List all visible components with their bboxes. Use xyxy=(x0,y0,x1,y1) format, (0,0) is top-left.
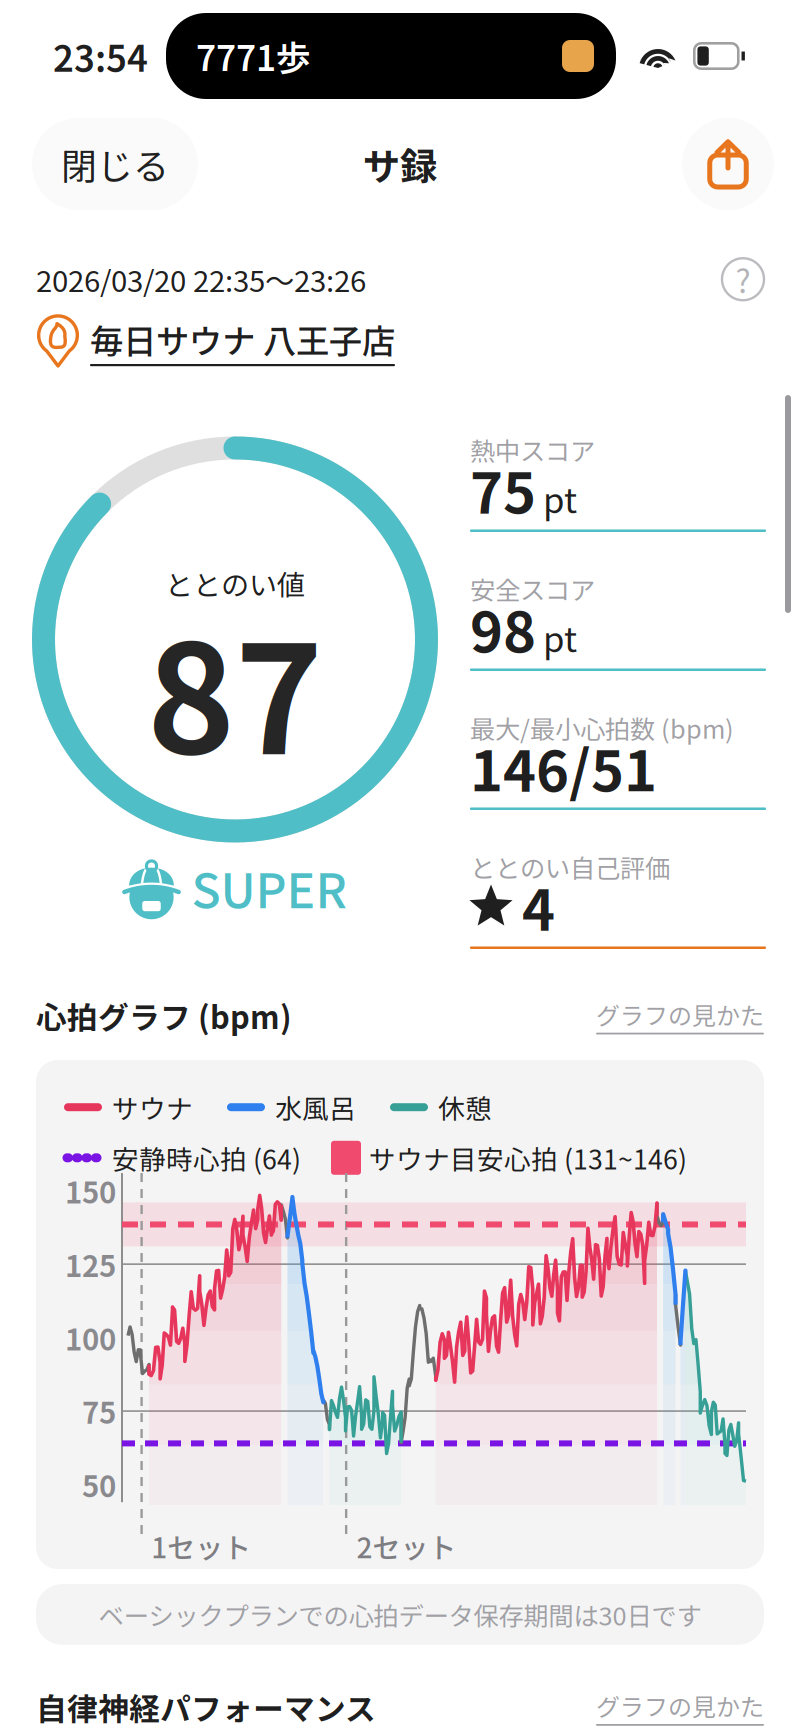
staticText: 100 xyxy=(65,1316,116,1359)
staticText: グラフの見かた xyxy=(596,997,764,1032)
staticText: 7771歩 xyxy=(196,31,311,81)
staticText: ととのい自己評価 xyxy=(470,848,670,885)
button[interactable]: 閉じる xyxy=(32,118,198,210)
staticText: 閉じる xyxy=(61,138,169,190)
button[interactable]: 毎日サウナ 八王子店 xyxy=(36,314,764,366)
staticText: 安全スコア xyxy=(470,570,595,607)
staticText: 熱中スコア xyxy=(470,431,595,468)
button[interactable]: グラフの見かた xyxy=(596,997,764,1034)
staticText: サウナ目安心拍 (131~146) xyxy=(369,1138,687,1177)
staticText: グラフの見かた xyxy=(596,1688,764,1723)
staticText: サウナ xyxy=(112,1088,193,1126)
staticText: 水風呂 xyxy=(275,1088,356,1126)
staticText: 75 xyxy=(82,1390,116,1432)
button[interactable]: Share xyxy=(682,118,774,210)
staticText: 2026/03/20 22:35〜23:26 xyxy=(36,258,366,300)
staticText: 2セット xyxy=(357,1526,457,1566)
staticText: 75 xyxy=(470,448,536,529)
staticText: 87 xyxy=(147,581,323,797)
staticText: 23:54 xyxy=(53,30,148,82)
staticText: 98 xyxy=(470,587,536,668)
button[interactable]: Help xyxy=(722,258,764,300)
staticText: pt xyxy=(543,612,577,662)
staticText: ベーシックプランでの心拍データ保存期間は30日です xyxy=(98,1596,701,1633)
staticText: 最大/最小心拍数 (bpm) xyxy=(470,709,734,746)
staticText: 146/51 xyxy=(470,726,657,807)
staticText: 毎日サウナ 八王子店 xyxy=(90,315,395,363)
staticText: 1セット xyxy=(151,1526,251,1566)
staticText: 50 xyxy=(82,1463,116,1506)
staticText: 自律神経パフォーマンス xyxy=(36,1685,376,1729)
staticText: 心拍グラフ (bpm) xyxy=(36,993,292,1038)
staticText: ととのい値 xyxy=(165,563,305,604)
staticText: pt xyxy=(543,473,577,523)
staticText: 4 xyxy=(522,865,555,946)
staticText: 安静時心拍 (64) xyxy=(112,1138,301,1177)
staticText: SUPER xyxy=(191,852,346,922)
button[interactable]: グラフの見かた xyxy=(596,1688,764,1726)
staticText: 150 xyxy=(65,1169,116,1212)
staticText: ? xyxy=(735,256,750,302)
staticText: 125 xyxy=(65,1243,116,1285)
staticText: サ録 xyxy=(363,137,437,191)
staticText: 休憩 xyxy=(438,1088,492,1126)
